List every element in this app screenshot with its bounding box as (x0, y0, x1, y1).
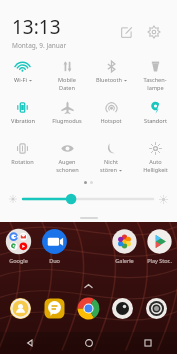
button[interactable]: Hotspot (89, 97, 133, 138)
button[interactable]: Play Stor.. (142, 228, 177, 264)
staticText: Rotation (11, 158, 34, 166)
button[interactable]: Mobile (45, 56, 89, 97)
button[interactable]: Rotation (0, 138, 45, 179)
staticText: 13:13 (12, 14, 61, 40)
button[interactable]: Nicht (89, 138, 133, 179)
staticText: Standort (144, 117, 167, 125)
staticText: schonen (56, 166, 79, 174)
staticText: Augen (58, 158, 76, 166)
button[interactable]: Kontakte (4, 296, 37, 321)
button[interactable]: Helligkeit (23, 191, 153, 207)
button[interactable]: Standort (133, 97, 177, 138)
staticText: Auto (149, 158, 162, 166)
staticText: Hotspot (100, 117, 122, 125)
button[interactable]: Wi-Fi (0, 56, 45, 97)
button[interactable]: Duo (36, 228, 72, 264)
button[interactable]: Bearbeiten (113, 19, 139, 45)
staticText: Mobile (58, 76, 76, 84)
button[interactable]: Chrome (71, 296, 105, 321)
button[interactable]: Taschen- (133, 56, 177, 97)
staticText: Wi-Fi (14, 76, 27, 84)
button[interactable]: Apps öffnen (84, 282, 93, 291)
staticText: Galerie (115, 257, 134, 264)
button[interactable]: Flugmodus (45, 97, 89, 138)
staticText: Nicht (104, 158, 118, 166)
button[interactable]: Augen (45, 138, 89, 179)
staticText: lampe (147, 84, 164, 92)
button[interactable]: Zurück (0, 332, 59, 354)
staticText: stören (100, 166, 117, 174)
staticText: Taschen- (143, 76, 167, 84)
staticText: Helligkeit (143, 166, 168, 174)
staticText: Play Stor.. (147, 257, 172, 264)
button[interactable]: Kamera (105, 296, 139, 321)
button[interactable]: Vibration (0, 97, 45, 138)
button[interactable]: Google (0, 228, 36, 264)
staticText: Montag, 9. Januar (12, 41, 67, 50)
button[interactable]: Startbildschirm (59, 332, 118, 354)
button[interactable]: Galerie (107, 228, 142, 264)
staticText: Google (9, 257, 28, 264)
staticText: Duo (49, 257, 60, 264)
button[interactable]: Nachrichten (37, 296, 71, 321)
staticText: Bluetooth (96, 76, 122, 84)
staticText: Vibration (11, 117, 35, 125)
button[interactable]: Kamera 2 (139, 296, 173, 321)
staticText: Daten (59, 84, 75, 92)
button[interactable]: Bluetooth (89, 56, 133, 97)
button[interactable]: Auto (133, 138, 177, 179)
staticText: Flugmodus (52, 117, 82, 125)
button[interactable]: Übersicht (118, 332, 177, 354)
button[interactable]: Einstellungen (141, 19, 167, 45)
